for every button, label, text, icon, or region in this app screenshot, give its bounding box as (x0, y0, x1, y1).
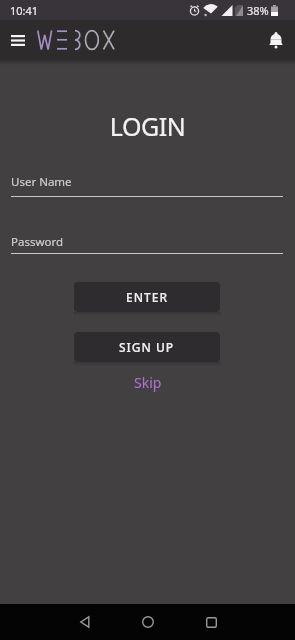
staticText: Password (11, 234, 64, 250)
button[interactable] (67, 604, 103, 640)
staticText: Skip (134, 373, 162, 392)
staticText: SIGN UP (119, 339, 175, 355)
button[interactable]: SIGN UP (74, 332, 220, 362)
staticText: 38% (247, 3, 269, 18)
staticText: 10:41 (10, 3, 39, 18)
button[interactable] (193, 604, 229, 640)
button[interactable]: ENTER (74, 282, 220, 312)
button[interactable] (6, 28, 30, 52)
staticText: ENTER (126, 289, 169, 305)
button[interactable] (262, 26, 290, 54)
button[interactable]: Skip (128, 371, 168, 394)
staticText: LOGIN (0, 109, 295, 143)
button[interactable] (130, 604, 166, 640)
staticText: User Name (11, 174, 72, 190)
